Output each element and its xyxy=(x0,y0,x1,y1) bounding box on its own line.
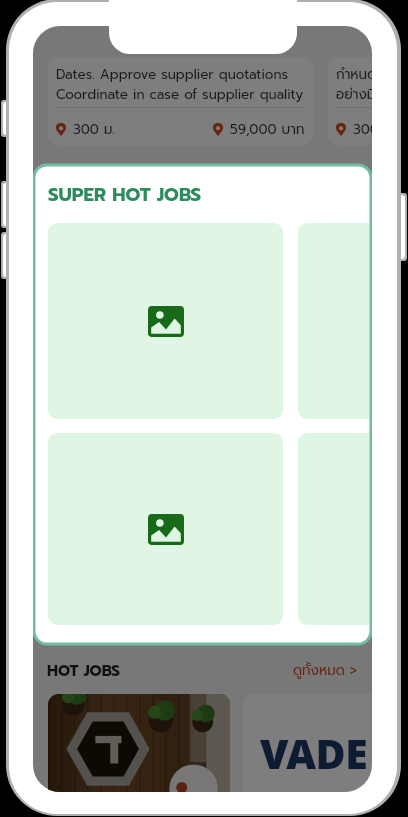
staticText: SUPER HOT JOBS xyxy=(48,181,202,209)
button[interactable]: Job photo xyxy=(243,694,372,792)
button[interactable]: Image placeholder xyxy=(48,433,283,625)
button[interactable]: Job photo xyxy=(48,694,230,792)
staticText: Dates. Approve supplier quotations xyxy=(56,64,289,84)
button[interactable]: Image placeholder xyxy=(48,223,283,419)
button[interactable]: ดูทั้งหมด > xyxy=(293,660,358,680)
button[interactable]: กำหนดวันส่งมอบสินค้า ติดตามงาน xyxy=(328,57,372,145)
other: Image placeholder xyxy=(148,306,184,337)
staticText: VADE xyxy=(260,725,368,781)
staticText: 300 ม. xyxy=(73,119,115,139)
other: Image placeholder xyxy=(148,514,184,545)
button[interactable]: Dates. Approve supplier quotations xyxy=(48,57,313,145)
staticText: กำหนดวันส่งมอบสินค้า ติดตามงาน xyxy=(336,64,372,84)
staticText: 59,000 บาท xyxy=(230,119,305,139)
staticText: 300 ม. xyxy=(353,119,372,139)
staticText: อย่างมีประสิทธิภาพและรวดเร็ว xyxy=(336,84,372,104)
button[interactable]: Image placeholder xyxy=(298,433,371,625)
staticText: HOT JOBS xyxy=(47,659,120,682)
staticText: Coordinate in case of supplier quality xyxy=(56,84,304,104)
button[interactable]: Image placeholder xyxy=(298,223,371,419)
